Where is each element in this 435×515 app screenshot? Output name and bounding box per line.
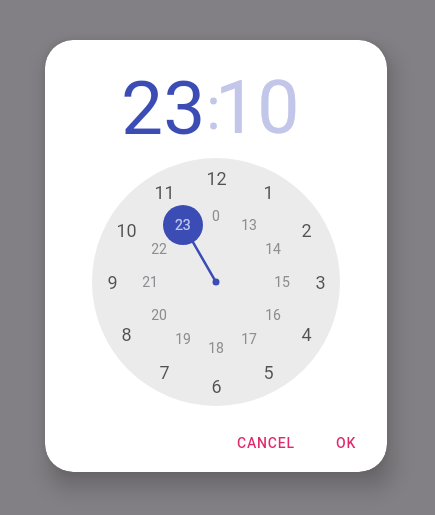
button[interactable]: 7 [144,352,184,392]
button[interactable]: 16 [253,295,293,335]
button[interactable]: 9 [92,262,132,302]
button[interactable]: CANCEL [222,428,310,458]
staticText: 16 [265,307,281,323]
staticText: 19 [175,331,191,347]
staticText: 6 [211,376,222,397]
button[interactable]: 14 [253,229,293,269]
button[interactable]: 0 [196,196,236,236]
button[interactable]: 22 [139,229,179,269]
staticText: 10 [116,220,137,241]
staticText: CANCEL [237,435,295,451]
staticText: 14 [265,241,281,257]
button[interactable]: 4 [286,314,326,354]
staticText: 12 [206,168,227,189]
staticText: 18 [208,340,224,356]
button[interactable]: 11 [144,172,184,212]
staticText: 0 [212,208,220,224]
staticText: 5 [263,362,274,383]
button[interactable]: 10 [106,210,146,250]
staticText: 3 [315,272,326,293]
button[interactable]: 18 [196,328,236,368]
button[interactable]: 17 [229,319,269,359]
staticText: 21 [142,274,158,290]
button[interactable]: 20 [139,295,179,335]
button[interactable]: 13 [229,205,269,245]
staticText: 22 [151,241,167,257]
button[interactable]: 8 [106,314,146,354]
staticText: 4 [301,324,312,345]
button[interactable]: 6 [196,366,236,406]
staticText: 23 [175,217,191,233]
staticText: 7 [159,362,170,383]
staticText: 20 [151,307,167,323]
staticText: 1 [263,182,274,203]
staticText: 2 [301,220,312,241]
button[interactable]: 19 [163,319,203,359]
button[interactable]: 12 [196,158,236,198]
staticText: 11 [154,182,175,203]
button[interactable]: 1 [248,172,288,212]
staticText: 10 [215,63,300,151]
staticText: 23 [121,64,206,152]
button[interactable]: 23 [163,205,203,245]
staticText: 17 [241,331,257,347]
staticText: 8 [121,324,132,345]
staticText: OK [336,435,357,451]
button[interactable]: 15 [262,262,302,302]
staticText: 9 [107,272,118,293]
button[interactable]: 21 [130,262,170,302]
button[interactable]: 5 [248,352,288,392]
staticText: 13 [241,217,257,233]
button[interactable]: 3 [300,262,340,302]
button[interactable]: OK [321,428,371,458]
button[interactable]: 2 [286,210,326,250]
staticText: 15 [274,274,290,290]
